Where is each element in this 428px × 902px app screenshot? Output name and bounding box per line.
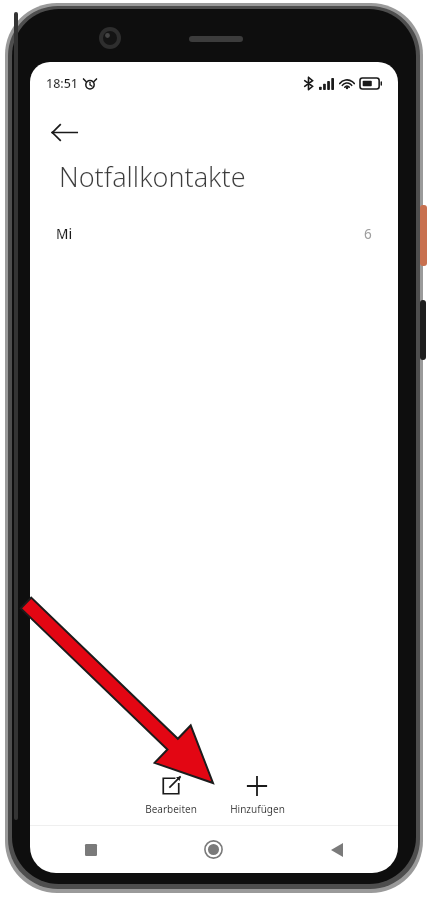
button[interactable]: Mi xyxy=(30,217,398,251)
staticText: Mi xyxy=(56,225,73,243)
staticText: Bearbeiten xyxy=(145,802,197,816)
staticText: Notfallkontakte xyxy=(59,158,246,195)
button[interactable]: Hinzufügen xyxy=(219,772,295,819)
button[interactable]: Zurück xyxy=(275,826,398,873)
staticText: Hinzufügen xyxy=(230,802,285,816)
button[interactable]: Übersicht xyxy=(30,826,152,873)
staticText: 6 xyxy=(364,225,372,243)
button[interactable]: Zurück xyxy=(40,108,88,156)
staticText: 18:51 xyxy=(46,75,79,92)
button[interactable]: Startbildschirm xyxy=(152,826,275,873)
button[interactable]: Bearbeiten xyxy=(133,772,209,819)
